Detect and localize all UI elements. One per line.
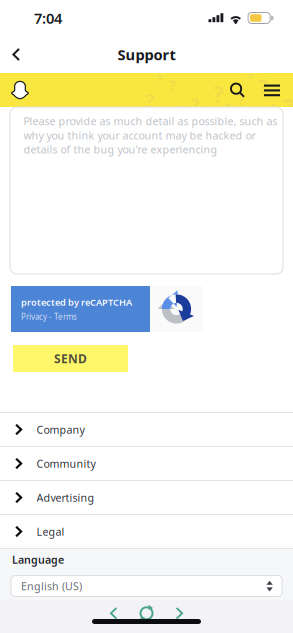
button[interactable]: Company [0,413,293,447]
staticText: ? [169,75,176,95]
staticText: SEND [54,350,87,366]
staticText: ? [259,74,268,99]
staticText: Community [37,456,96,471]
staticText: protected by reCAPTCHA [21,296,132,308]
button[interactable]: Legal [0,515,293,549]
button[interactable]: Menu [255,73,293,106]
staticText: ? [271,101,276,115]
staticText: ? [213,79,224,109]
button[interactable]: Snapchat home [0,73,37,106]
button[interactable]: Reload [129,604,163,622]
staticText: ? [225,100,231,116]
button[interactable]: Forward [163,604,195,623]
button[interactable]: Search [220,73,255,107]
staticText: English (US) [21,579,82,593]
staticText: Please provide as much detail as possibl… [23,114,277,156]
button[interactable]: SEND [13,345,128,372]
staticText: ? [191,93,199,116]
staticText: ? [203,103,208,117]
staticText: Privacy - Terms [21,311,77,322]
staticText: Advertising [37,490,95,505]
staticText: Language [12,552,64,567]
button[interactable]: Community [0,447,293,481]
staticText: ? [145,87,155,114]
staticText: ? [237,89,245,110]
staticText: Support [117,45,175,64]
button[interactable]: Back [98,604,129,623]
staticText: ? [247,70,253,86]
button[interactable]: English (US) [0,567,293,597]
staticText: ? [283,91,293,123]
button[interactable]: Advertising [0,481,293,515]
staticText: Legal [37,524,65,539]
staticText: ? [157,71,163,87]
staticText: 7:04 [34,8,62,28]
button[interactable]: Back [0,38,34,71]
staticText: Company [37,422,85,437]
staticText: ? [181,101,187,119]
